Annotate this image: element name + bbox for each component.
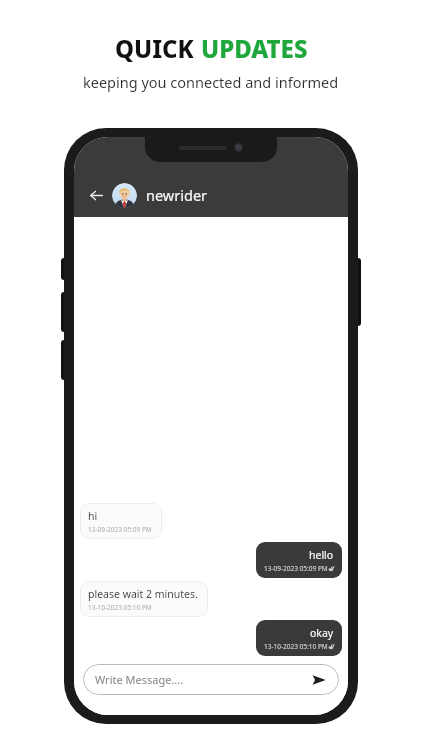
button[interactable]: hello xyxy=(256,542,342,578)
staticText: QUICK xyxy=(115,32,201,65)
staticText: newrider xyxy=(146,185,208,205)
staticText: hi xyxy=(88,509,98,523)
button[interactable]: Send xyxy=(310,671,328,689)
button[interactable]: Back xyxy=(83,182,109,208)
staticText: UPDATES xyxy=(201,32,308,65)
button[interactable]: please wait 2 minutes. xyxy=(80,581,208,617)
staticText: hello xyxy=(309,548,334,562)
staticText: 13-10-2023 05:10 PM xyxy=(88,603,152,612)
staticText: please wait 2 minutes. xyxy=(88,587,198,601)
staticText: keeping you connected and informed xyxy=(83,72,339,92)
button[interactable]: hi xyxy=(80,503,162,539)
staticText: okay xyxy=(310,626,334,640)
staticText: 13-10-2023 05:10 PM xyxy=(264,642,328,651)
staticText: 13-09-2023 05:09 PM xyxy=(264,564,328,573)
staticText: Write Message.... xyxy=(95,672,184,687)
button[interactable]: Write Message.... xyxy=(83,664,339,695)
button[interactable]: okay xyxy=(256,620,342,656)
staticText: 13-09-2023 05:09 PM xyxy=(88,525,152,534)
